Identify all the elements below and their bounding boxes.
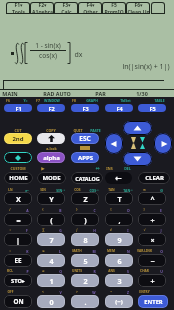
staticText: . xyxy=(84,297,87,307)
staticText: ANS xyxy=(108,269,115,273)
button[interactable]: T xyxy=(105,192,133,205)
button[interactable]: | xyxy=(4,233,32,246)
staticText: HOME xyxy=(9,174,28,182)
button[interactable]: 8 xyxy=(71,233,99,246)
staticText: F2▾ xyxy=(38,2,47,9)
staticText: VAR-LINK xyxy=(137,249,152,253)
button[interactable]: alpha xyxy=(37,152,65,163)
button[interactable]: Up xyxy=(123,121,152,135)
staticText: F2 xyxy=(48,105,55,112)
staticText: EE xyxy=(14,256,22,265)
staticText: Z xyxy=(127,290,129,295)
button[interactable]: 7 xyxy=(37,233,65,246)
button[interactable]: 6 xyxy=(105,254,133,267)
button[interactable]: F2▾ xyxy=(30,2,54,14)
button[interactable]: APPS xyxy=(71,152,99,163)
staticText: cos(x) xyxy=(39,51,57,60)
button[interactable]: Y xyxy=(37,192,65,205)
button[interactable]: CLEAR xyxy=(138,172,170,184)
button[interactable]: F5 xyxy=(138,104,166,112)
button[interactable]: ( xyxy=(37,213,65,226)
button[interactable]: 2nd xyxy=(4,133,32,144)
staticText: MEM xyxy=(107,249,115,253)
button[interactable]: F1 xyxy=(4,104,32,112)
button[interactable]: EE xyxy=(4,254,32,267)
staticText: WINDOW xyxy=(44,98,60,103)
button[interactable]: − xyxy=(138,254,166,267)
button[interactable]: STO▸ xyxy=(4,274,32,287)
staticText: CATALOG xyxy=(75,175,100,182)
staticText: alpha xyxy=(43,154,60,162)
staticText: Θ xyxy=(160,188,163,193)
staticText: • xyxy=(110,290,112,294)
button[interactable]: F5 xyxy=(102,2,126,14)
staticText: 5 xyxy=(83,256,88,266)
staticText: Y xyxy=(49,194,54,204)
staticText: Y= xyxy=(23,98,28,103)
staticText: TblSet xyxy=(120,98,131,103)
button[interactable]: HOME xyxy=(4,172,33,184)
staticText: X xyxy=(16,194,21,204)
button[interactable]: F3▾ xyxy=(54,2,78,14)
button[interactable]: Backspace xyxy=(105,172,132,184)
button[interactable]: , xyxy=(105,213,133,226)
staticText: M xyxy=(92,249,96,254)
button[interactable]: F1▾ xyxy=(6,2,30,14)
button[interactable]: ESC xyxy=(71,133,99,144)
button[interactable]: F4▾ xyxy=(78,2,102,14)
staticText: F5 xyxy=(111,2,117,9)
button[interactable]: X xyxy=(4,192,32,205)
staticText: ∫ xyxy=(76,228,78,232)
button[interactable]: 1 xyxy=(37,274,65,287)
button[interactable]: (−) xyxy=(105,295,133,308)
staticText: F6▾ xyxy=(134,2,143,9)
staticText: − xyxy=(150,256,155,266)
staticText: | xyxy=(16,235,20,245)
staticText: H xyxy=(93,228,96,233)
button[interactable]: Diamond xyxy=(4,152,32,163)
button[interactable]: CATALOG xyxy=(71,172,103,184)
button[interactable]: Down xyxy=(123,152,152,166)
staticText: ∑ xyxy=(42,228,45,232)
staticText: MATH xyxy=(72,249,82,253)
button[interactable]: 3 xyxy=(105,274,133,287)
button[interactable]: = xyxy=(4,213,32,226)
button[interactable]: + xyxy=(138,274,166,287)
button[interactable]: Z xyxy=(71,192,99,205)
button[interactable]: ENTER xyxy=(138,295,168,308)
button[interactable]: F3 xyxy=(71,104,99,112)
staticText: GRAPH xyxy=(86,98,98,103)
staticText: 6 xyxy=(117,256,122,266)
button[interactable]: 2 xyxy=(71,274,99,287)
button[interactable]: × xyxy=(138,233,166,246)
button[interactable]: ÷ xyxy=(138,213,166,226)
button[interactable]: F2 xyxy=(37,104,65,112)
staticText: APPS xyxy=(78,154,93,162)
button[interactable]: 0 xyxy=(37,295,65,308)
button[interactable]: F6▾ xyxy=(126,2,150,14)
button[interactable]: ^ xyxy=(138,192,166,205)
staticText: { xyxy=(42,208,44,212)
button[interactable]: F4 xyxy=(105,104,133,112)
button[interactable]: 9 xyxy=(105,233,133,246)
button[interactable]: 4 xyxy=(37,254,65,267)
staticText: 7 xyxy=(49,235,54,245)
staticText: QUIT xyxy=(73,128,83,133)
button[interactable]: Left xyxy=(105,133,123,154)
staticText: Tools xyxy=(12,9,25,14)
staticText: 1/30 xyxy=(136,90,148,97)
button[interactable]: Right xyxy=(154,133,172,154)
staticText: R xyxy=(93,269,96,274)
staticText: Calc xyxy=(61,9,72,14)
button[interactable]: ON xyxy=(4,295,32,308)
button[interactable]: ) xyxy=(71,213,99,226)
staticText: F4 xyxy=(116,105,123,112)
button[interactable]: 5 xyxy=(71,254,99,267)
staticText: ‹ xyxy=(9,228,11,232)
staticText: F xyxy=(26,228,28,233)
button[interactable]: Shift xyxy=(37,133,65,144)
button[interactable]: MODE xyxy=(37,172,66,184)
staticText: STO▸ xyxy=(11,277,25,285)
staticText: √ xyxy=(143,228,146,232)
button[interactable]: . xyxy=(71,295,99,308)
